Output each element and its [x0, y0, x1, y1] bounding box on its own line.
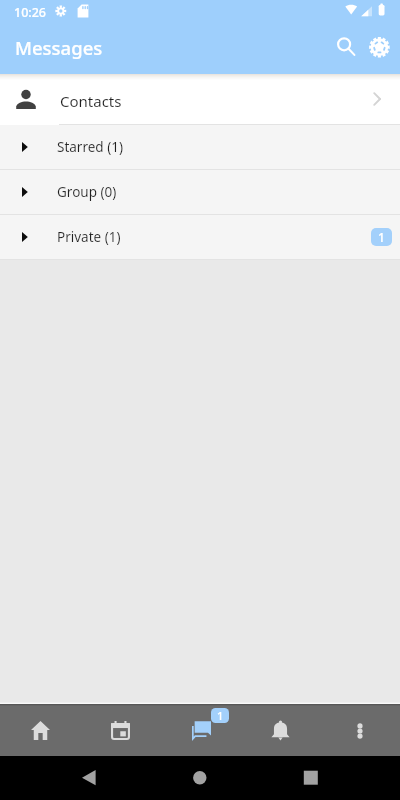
staticText: Contacts [60, 91, 122, 111]
staticText: Group (0) [57, 183, 117, 201]
staticText: Messages [15, 35, 103, 60]
staticText: 1 [217, 708, 224, 723]
button[interactable]: Starred (1) [0, 125, 400, 169]
staticText: 1 [378, 229, 385, 245]
button[interactable]: Notifications [240, 702, 320, 756]
button[interactable]: Search [326, 19, 364, 57]
button[interactable]: Group (0) [0, 170, 400, 214]
button[interactable]: More options [320, 702, 400, 756]
button[interactable]: Messages [160, 702, 240, 756]
staticText: Starred (1) [57, 138, 123, 156]
button[interactable]: Contacts [0, 74, 400, 124]
staticText: Private (1) [57, 228, 121, 246]
staticText: 10:26 [14, 4, 47, 21]
button[interactable]: Private (1) [0, 215, 400, 259]
button[interactable]: Calendar [80, 702, 160, 756]
button[interactable]: Settings [362, 20, 398, 56]
button[interactable]: Home [0, 702, 80, 756]
